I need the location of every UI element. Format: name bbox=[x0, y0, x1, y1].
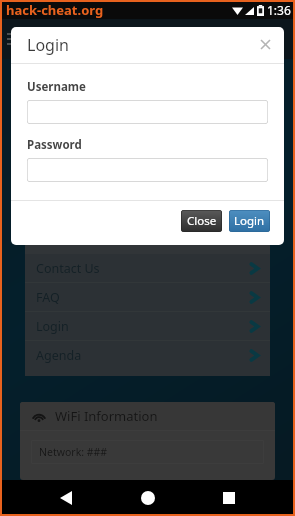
button[interactable]: Back bbox=[50, 482, 82, 514]
staticText: Close bbox=[187, 213, 217, 229]
button[interactable]: Close bbox=[181, 210, 222, 232]
staticText: Login bbox=[27, 34, 69, 56]
button[interactable]: Login bbox=[25, 312, 270, 340]
staticText: Agenda bbox=[36, 347, 82, 364]
button[interactable] bbox=[27, 100, 268, 124]
button[interactable]: Home bbox=[132, 482, 164, 514]
staticText: Login bbox=[36, 318, 69, 335]
staticText: Network: ### bbox=[39, 445, 108, 459]
button[interactable]: Login bbox=[229, 210, 270, 232]
staticText: Contact Us bbox=[36, 260, 100, 277]
button[interactable]: Agenda bbox=[25, 341, 270, 369]
staticText: Login bbox=[234, 213, 265, 229]
button[interactable]: Contact Us bbox=[25, 254, 270, 282]
staticText: Username bbox=[27, 79, 86, 95]
button[interactable] bbox=[27, 158, 268, 182]
button[interactable]: FAQ bbox=[25, 283, 270, 311]
staticText: 1:36 bbox=[267, 2, 291, 18]
button[interactable]: Close dialog bbox=[254, 33, 276, 55]
button[interactable]: Recent apps bbox=[213, 482, 245, 514]
staticText: FAQ bbox=[36, 289, 60, 306]
staticText: hack-cheat.org bbox=[6, 1, 104, 19]
staticText: Password bbox=[27, 137, 82, 153]
staticText: WiFi Information bbox=[55, 407, 158, 425]
